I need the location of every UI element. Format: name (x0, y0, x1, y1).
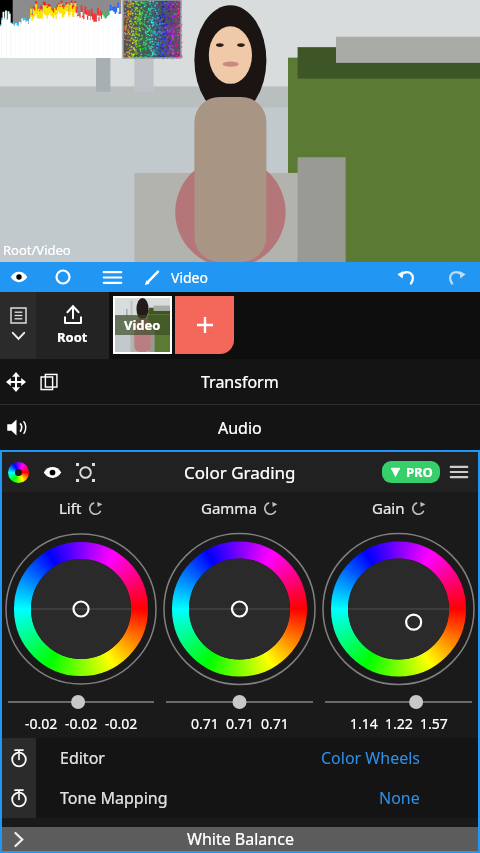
staticText: -0.02 (65, 714, 98, 733)
staticText: Gain (372, 498, 405, 518)
staticText: 0.71 (191, 714, 219, 733)
staticText: Audio (218, 417, 262, 439)
button[interactable]: Add layer (175, 296, 234, 354)
button[interactable]: Gain (319, 492, 478, 524)
button[interactable]: Audio (0, 405, 480, 450)
button[interactable]: Layers list (0, 292, 36, 359)
button[interactable] (160, 524, 319, 694)
staticText: Color Wheels (321, 747, 420, 769)
staticText: -0.02 (25, 714, 58, 733)
staticText: None (379, 787, 420, 809)
button[interactable] (2, 524, 160, 694)
button[interactable]: Redo (432, 262, 480, 292)
staticText: Transform (201, 371, 279, 393)
button[interactable]: PRO (382, 461, 440, 483)
staticText: Root (57, 328, 88, 346)
staticText: Editor (60, 747, 105, 769)
staticText: Video (124, 316, 161, 334)
button[interactable]: Video (115, 298, 170, 352)
button[interactable]: White Balance (2, 827, 478, 851)
button[interactable] (325, 694, 472, 710)
staticText: Lift (59, 498, 82, 518)
staticText: 0.71 (226, 714, 254, 733)
staticText: 1.14 (350, 714, 378, 733)
button[interactable]: Root (36, 292, 109, 359)
staticText: Tone Mapping (60, 787, 168, 809)
button[interactable]: Gamma (160, 492, 319, 524)
button[interactable]: Lift (2, 492, 160, 524)
button[interactable] (8, 694, 154, 710)
button[interactable]: Transform (0, 359, 480, 404)
button[interactable]: Tone Mapping (2, 778, 478, 818)
staticText: 1.22 (385, 714, 413, 733)
staticText: White Balance (187, 828, 294, 850)
staticText: -0.02 (105, 714, 138, 733)
button[interactable]: Options (440, 452, 478, 492)
staticText: Video (171, 268, 208, 287)
button[interactable] (319, 524, 478, 694)
button[interactable]: Preview visibility (0, 262, 38, 292)
button[interactable]: Mask (38, 262, 88, 292)
button[interactable]: Undo (382, 262, 432, 292)
button[interactable] (166, 694, 313, 710)
staticText: 0.71 (261, 714, 289, 733)
staticText: Gamma (201, 498, 257, 518)
staticText: 1.57 (420, 714, 448, 733)
button[interactable]: Menu (88, 262, 136, 292)
button[interactable]: Color Grading (2, 452, 478, 492)
button[interactable]: Editor (2, 738, 478, 778)
staticText: Color Grading (184, 461, 296, 484)
staticText: Root/Video (3, 241, 71, 259)
button[interactable]: Video (136, 262, 382, 292)
staticText: PRO (406, 463, 433, 481)
